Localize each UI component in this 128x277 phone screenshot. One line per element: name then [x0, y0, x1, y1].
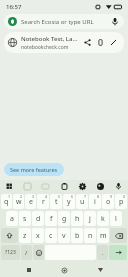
button[interactable]: Clipboard	[58, 180, 71, 193]
button[interactable]: Backspace	[110, 228, 127, 243]
staticText: 6	[71, 194, 74, 199]
staticText: Notebook Test, Lapto...	[21, 35, 81, 43]
button[interactable]: u	[76, 194, 88, 209]
button[interactable]: Emoji	[33, 245, 44, 260]
button[interactable]: Notebook Test, Lapto...	[4, 32, 124, 53]
button[interactable]: f	[45, 211, 57, 226]
button[interactable]: Recents	[22, 263, 36, 277]
button[interactable]: b	[71, 228, 83, 243]
button[interactable]: Shift	[1, 228, 18, 243]
staticText: u	[80, 197, 85, 207]
button[interactable]: Settings	[76, 180, 89, 193]
button[interactable]: v	[58, 228, 70, 243]
staticText: .	[102, 249, 104, 257]
button[interactable]: w	[13, 194, 24, 209]
staticText: x	[36, 231, 40, 241]
button[interactable]: p	[115, 194, 127, 209]
staticText: e	[29, 197, 33, 207]
button[interactable]: ?123	[1, 245, 20, 260]
staticText: 16:57	[6, 3, 22, 11]
staticText: f	[50, 214, 53, 224]
button[interactable]: Voice input	[112, 180, 125, 193]
button[interactable]: l	[110, 211, 122, 226]
button[interactable]: Voice search	[110, 17, 120, 27]
button[interactable]: q	[1, 194, 12, 209]
staticText: s	[23, 214, 27, 224]
button[interactable]: s	[19, 211, 31, 226]
staticText: n	[88, 231, 93, 241]
button[interactable]: o	[102, 194, 114, 209]
staticText: 2	[20, 194, 23, 199]
staticText: 5	[58, 194, 61, 199]
staticText: 8	[97, 194, 100, 199]
staticText: 1	[8, 194, 11, 199]
staticText: l	[115, 214, 117, 224]
staticText: 9	[110, 194, 113, 199]
staticText: o	[106, 197, 111, 207]
staticText: w	[16, 197, 22, 207]
button[interactable]: x	[32, 228, 44, 243]
staticText: /	[25, 249, 28, 257]
staticText: 3	[32, 194, 35, 199]
button[interactable]: Themes	[94, 180, 107, 193]
staticText: 0	[123, 194, 126, 199]
button[interactable]: c	[45, 228, 57, 243]
button[interactable]: /	[21, 245, 32, 260]
staticText: See more features	[10, 166, 58, 173]
button[interactable]: a	[6, 211, 18, 226]
staticText: p	[119, 197, 124, 207]
button[interactable]: Stickers	[21, 180, 34, 193]
button[interactable]: GIF	[39, 180, 52, 193]
staticText: 7	[84, 194, 87, 199]
staticText: m	[100, 231, 107, 241]
button[interactable]: Apps	[3, 180, 16, 193]
button[interactable]: j	[84, 211, 96, 226]
staticText: ?123	[5, 249, 16, 256]
button[interactable]: z	[19, 228, 31, 243]
button[interactable]: e	[25, 194, 36, 209]
staticText: d	[36, 214, 41, 224]
button[interactable]: m	[97, 228, 109, 243]
button[interactable]: k	[97, 211, 109, 226]
button[interactable]: Home	[57, 263, 71, 277]
staticText: t	[55, 197, 58, 207]
button[interactable]: .	[97, 245, 108, 260]
staticText: y	[67, 197, 71, 207]
button[interactable]: i	[89, 194, 101, 209]
button[interactable]: Open in new tab	[94, 36, 107, 49]
staticText: v	[62, 231, 66, 241]
button[interactable]: y	[63, 194, 75, 209]
staticText: k	[101, 214, 105, 224]
staticText: 4	[45, 194, 48, 199]
button[interactable]: g	[58, 211, 70, 226]
button[interactable]: Search Ecosia or type URL	[4, 14, 124, 29]
button[interactable]: Share	[81, 36, 94, 49]
button[interactable]: n	[84, 228, 96, 243]
button[interactable]: d	[32, 211, 44, 226]
staticText: b	[75, 231, 80, 241]
button[interactable]: Edit query	[107, 36, 120, 49]
button[interactable]: r	[37, 194, 49, 209]
staticText: j	[89, 214, 91, 224]
button[interactable]: See more features	[4, 163, 64, 176]
staticText: q	[4, 197, 9, 207]
staticText: g	[62, 214, 67, 224]
button[interactable]: Back	[93, 263, 107, 277]
button[interactable]: Enter	[109, 245, 127, 260]
staticText: r	[42, 197, 45, 207]
staticText: c	[49, 231, 53, 241]
staticText: Search Ecosia or type URL	[21, 18, 94, 26]
staticText: a	[10, 214, 14, 224]
button[interactable]: t	[50, 194, 62, 209]
staticText: z	[23, 231, 27, 241]
staticText: h	[75, 214, 80, 224]
staticText: i	[94, 197, 96, 207]
button[interactable]: h	[71, 211, 83, 226]
staticText: notebookcheck.com	[21, 44, 69, 51]
